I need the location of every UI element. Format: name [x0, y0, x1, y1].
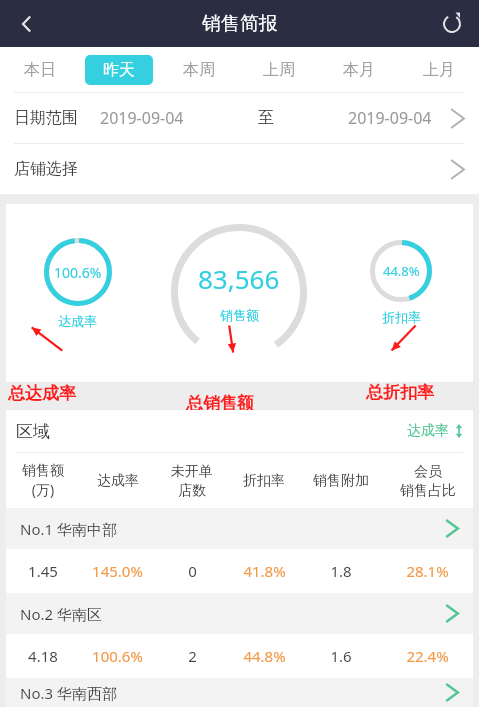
staticText: 上月 [423, 60, 455, 80]
staticText: 44.8% [243, 646, 286, 666]
staticText: 店铺选择 [14, 159, 78, 179]
staticText: 达成率 [407, 422, 449, 440]
staticText: 83,566 [198, 261, 280, 296]
staticText: 总达成率 [8, 383, 76, 404]
staticText: 28.1% [406, 561, 449, 581]
button[interactable]: Refresh [425, 0, 479, 47]
staticText: 未开单 店数 [171, 463, 213, 499]
staticText: 44.8% [383, 262, 420, 280]
staticText: 100.6% [54, 263, 102, 282]
staticText: No.3 华南西部 [20, 683, 117, 703]
button[interactable]: 本周 [159, 47, 239, 92]
button[interactable]: 4.18 [6, 634, 473, 678]
button[interactable]: No.3 华南西部 [6, 678, 473, 707]
staticText: 达成率 [58, 313, 97, 329]
staticText: 0 [188, 561, 197, 581]
staticText: 总销售额 [186, 393, 254, 414]
button[interactable]: 昨天 [79, 47, 159, 92]
button[interactable]: 本月 [319, 47, 399, 92]
staticText: 本周 [183, 60, 215, 80]
staticText: 本月 [343, 60, 375, 80]
button[interactable]: 上月 [399, 47, 479, 92]
staticText: 1.45 [28, 561, 58, 581]
staticText: 至 [258, 108, 274, 128]
staticText: 145.0% [92, 561, 143, 581]
staticText: 销售额 [220, 307, 259, 323]
staticText: No.2 华南区 [20, 604, 102, 624]
staticText: 达成率 [97, 472, 139, 490]
staticText: 22.4% [406, 646, 449, 666]
staticText: 1.8 [330, 561, 352, 581]
staticText: 折扣率 [243, 472, 285, 490]
staticText: 会员 销售占比 [400, 463, 456, 499]
button[interactable]: 上周 [239, 47, 319, 92]
staticText: 销售附加 [313, 472, 369, 490]
staticText: 2019-09-04 [348, 107, 432, 129]
staticText: 区域 [16, 421, 50, 442]
staticText: 2 [188, 646, 197, 666]
staticText: 2019-09-04 [100, 107, 184, 129]
button[interactable]: 日期范围 [0, 93, 479, 143]
staticText: 本日 [24, 60, 56, 80]
staticText: 上周 [263, 60, 295, 80]
staticText: 1.6 [330, 646, 352, 666]
button[interactable]: No.2 华南区 [6, 593, 473, 634]
staticText: 100.6% [92, 646, 143, 666]
button[interactable]: 店铺选择 [0, 144, 479, 194]
button[interactable]: 达成率 [407, 422, 463, 440]
button[interactable]: 本日 [0, 47, 79, 92]
staticText: 折扣率 [382, 309, 421, 325]
staticText: No.1 华南中部 [20, 519, 117, 539]
button[interactable]: 1.45 [6, 549, 473, 593]
button[interactable]: No.1 华南中部 [6, 508, 473, 549]
staticText: 41.8% [243, 561, 286, 581]
staticText: 昨天 [103, 60, 135, 80]
staticText: 总折扣率 [366, 382, 434, 403]
staticText: 日期范围 [14, 108, 78, 128]
staticText: 4.18 [28, 646, 58, 666]
staticText: 销售简报 [202, 12, 278, 36]
staticText: 销售额 (万) [22, 462, 64, 499]
button[interactable]: Back [0, 0, 54, 47]
